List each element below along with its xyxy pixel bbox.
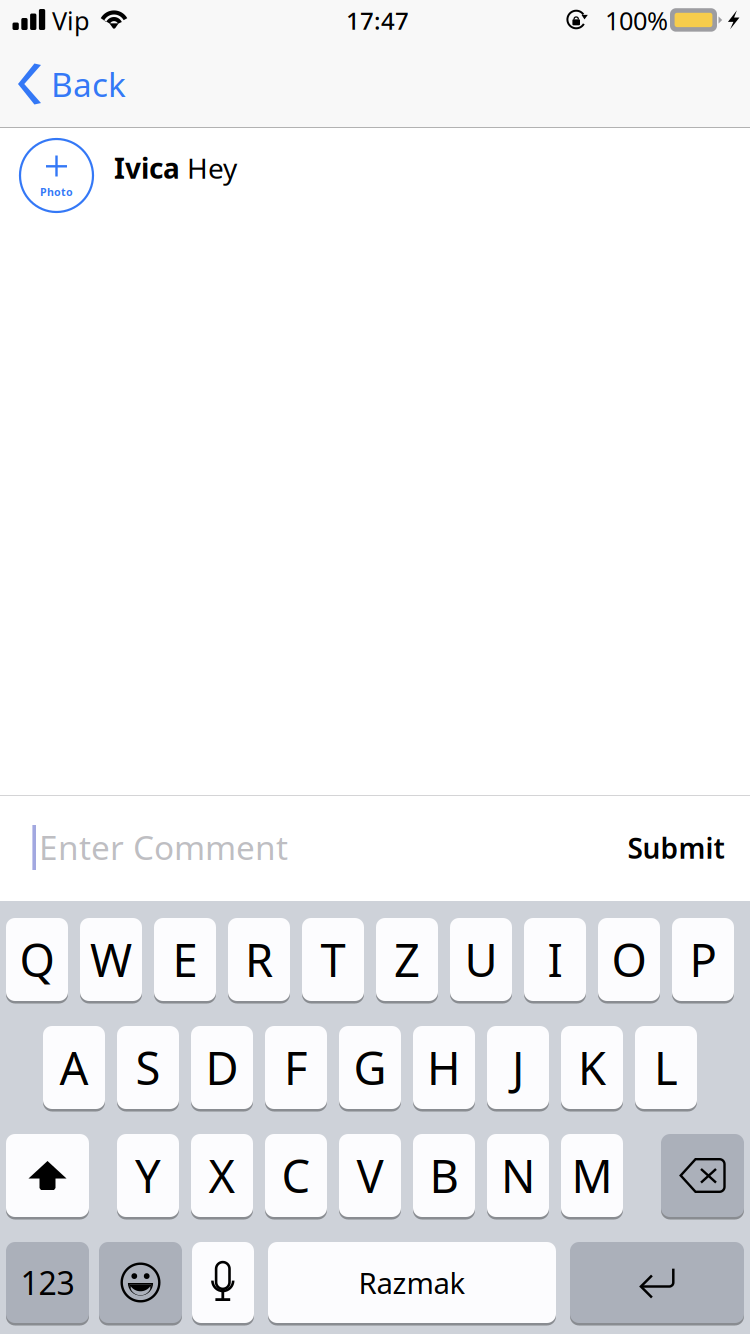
staticText: Submit bbox=[627, 829, 724, 867]
button[interactable]: A bbox=[43, 1026, 105, 1111]
staticText: D bbox=[205, 1037, 238, 1098]
staticText: W bbox=[90, 929, 132, 990]
button[interactable]: P bbox=[672, 918, 734, 1003]
button[interactable]: Dictate bbox=[192, 1242, 254, 1325]
button[interactable]: F bbox=[265, 1026, 327, 1111]
button[interactable]: D bbox=[191, 1026, 253, 1111]
staticText: Photo bbox=[40, 185, 73, 199]
button[interactable]: W bbox=[80, 918, 142, 1003]
staticText: M bbox=[571, 1145, 612, 1206]
button[interactable]: Back bbox=[0, 50, 142, 118]
staticText: X bbox=[208, 1145, 235, 1206]
staticText: 17:47 bbox=[346, 5, 409, 36]
staticText: Vip bbox=[52, 4, 90, 37]
button[interactable]: C bbox=[265, 1134, 327, 1219]
button[interactable]: Submit bbox=[611, 818, 741, 878]
staticText: T bbox=[320, 929, 345, 990]
staticText: Back bbox=[51, 62, 126, 106]
staticText: F bbox=[284, 1037, 308, 1098]
staticText: O bbox=[611, 929, 646, 990]
staticText: Ivica bbox=[114, 149, 187, 187]
button[interactable]: J bbox=[487, 1026, 549, 1111]
button[interactable]: L bbox=[635, 1026, 697, 1111]
staticText: R bbox=[245, 929, 273, 990]
staticText: E bbox=[172, 929, 197, 990]
button[interactable]: Return bbox=[570, 1242, 744, 1325]
staticText: Enter Comment bbox=[39, 825, 288, 869]
button[interactable]: T bbox=[302, 918, 364, 1003]
staticText: V bbox=[356, 1145, 383, 1206]
staticText: G bbox=[353, 1037, 386, 1098]
button[interactable]: G bbox=[339, 1026, 401, 1111]
button[interactable]: U bbox=[450, 918, 512, 1003]
staticText: H bbox=[427, 1037, 461, 1098]
button[interactable]: Q bbox=[6, 918, 68, 1003]
staticText: K bbox=[578, 1037, 606, 1098]
button[interactable]: Delete bbox=[661, 1134, 744, 1219]
button[interactable]: X bbox=[191, 1134, 253, 1219]
staticText: Y bbox=[135, 1145, 161, 1206]
button[interactable]: Z bbox=[376, 918, 438, 1003]
staticText: Hey bbox=[187, 149, 237, 187]
staticText: C bbox=[281, 1145, 310, 1206]
staticText: P bbox=[689, 929, 716, 990]
staticText: Z bbox=[394, 929, 420, 990]
button[interactable]: R bbox=[228, 918, 290, 1003]
button[interactable]: V bbox=[339, 1134, 401, 1219]
button[interactable]: M bbox=[561, 1134, 623, 1219]
button[interactable]: Add photo bbox=[20, 139, 93, 212]
staticText: Razmak bbox=[358, 1263, 465, 1302]
button[interactable]: Shift bbox=[6, 1134, 89, 1219]
button[interactable]: I bbox=[524, 918, 586, 1003]
button[interactable]: Emoji bbox=[99, 1242, 182, 1325]
button[interactable]: H bbox=[413, 1026, 475, 1111]
staticText: B bbox=[429, 1145, 458, 1206]
button[interactable]: Razmak bbox=[268, 1242, 556, 1325]
staticText: S bbox=[135, 1037, 160, 1098]
staticText: Q bbox=[19, 929, 54, 990]
staticText: 123 bbox=[20, 1261, 74, 1304]
button[interactable]: B bbox=[413, 1134, 475, 1219]
staticText: J bbox=[512, 1037, 524, 1098]
staticText: A bbox=[59, 1037, 88, 1098]
button[interactable]: O bbox=[598, 918, 660, 1003]
button[interactable]: 123 bbox=[6, 1242, 89, 1325]
button[interactable]: Y bbox=[117, 1134, 179, 1219]
button[interactable]: N bbox=[487, 1134, 549, 1219]
staticText: U bbox=[464, 929, 497, 990]
staticText: L bbox=[654, 1037, 678, 1098]
staticText: N bbox=[501, 1145, 535, 1206]
staticText: I bbox=[547, 929, 562, 990]
button[interactable]: E bbox=[154, 918, 216, 1003]
button[interactable]: K bbox=[561, 1026, 623, 1111]
button[interactable]: S bbox=[117, 1026, 179, 1111]
staticText: 100% bbox=[605, 4, 668, 37]
